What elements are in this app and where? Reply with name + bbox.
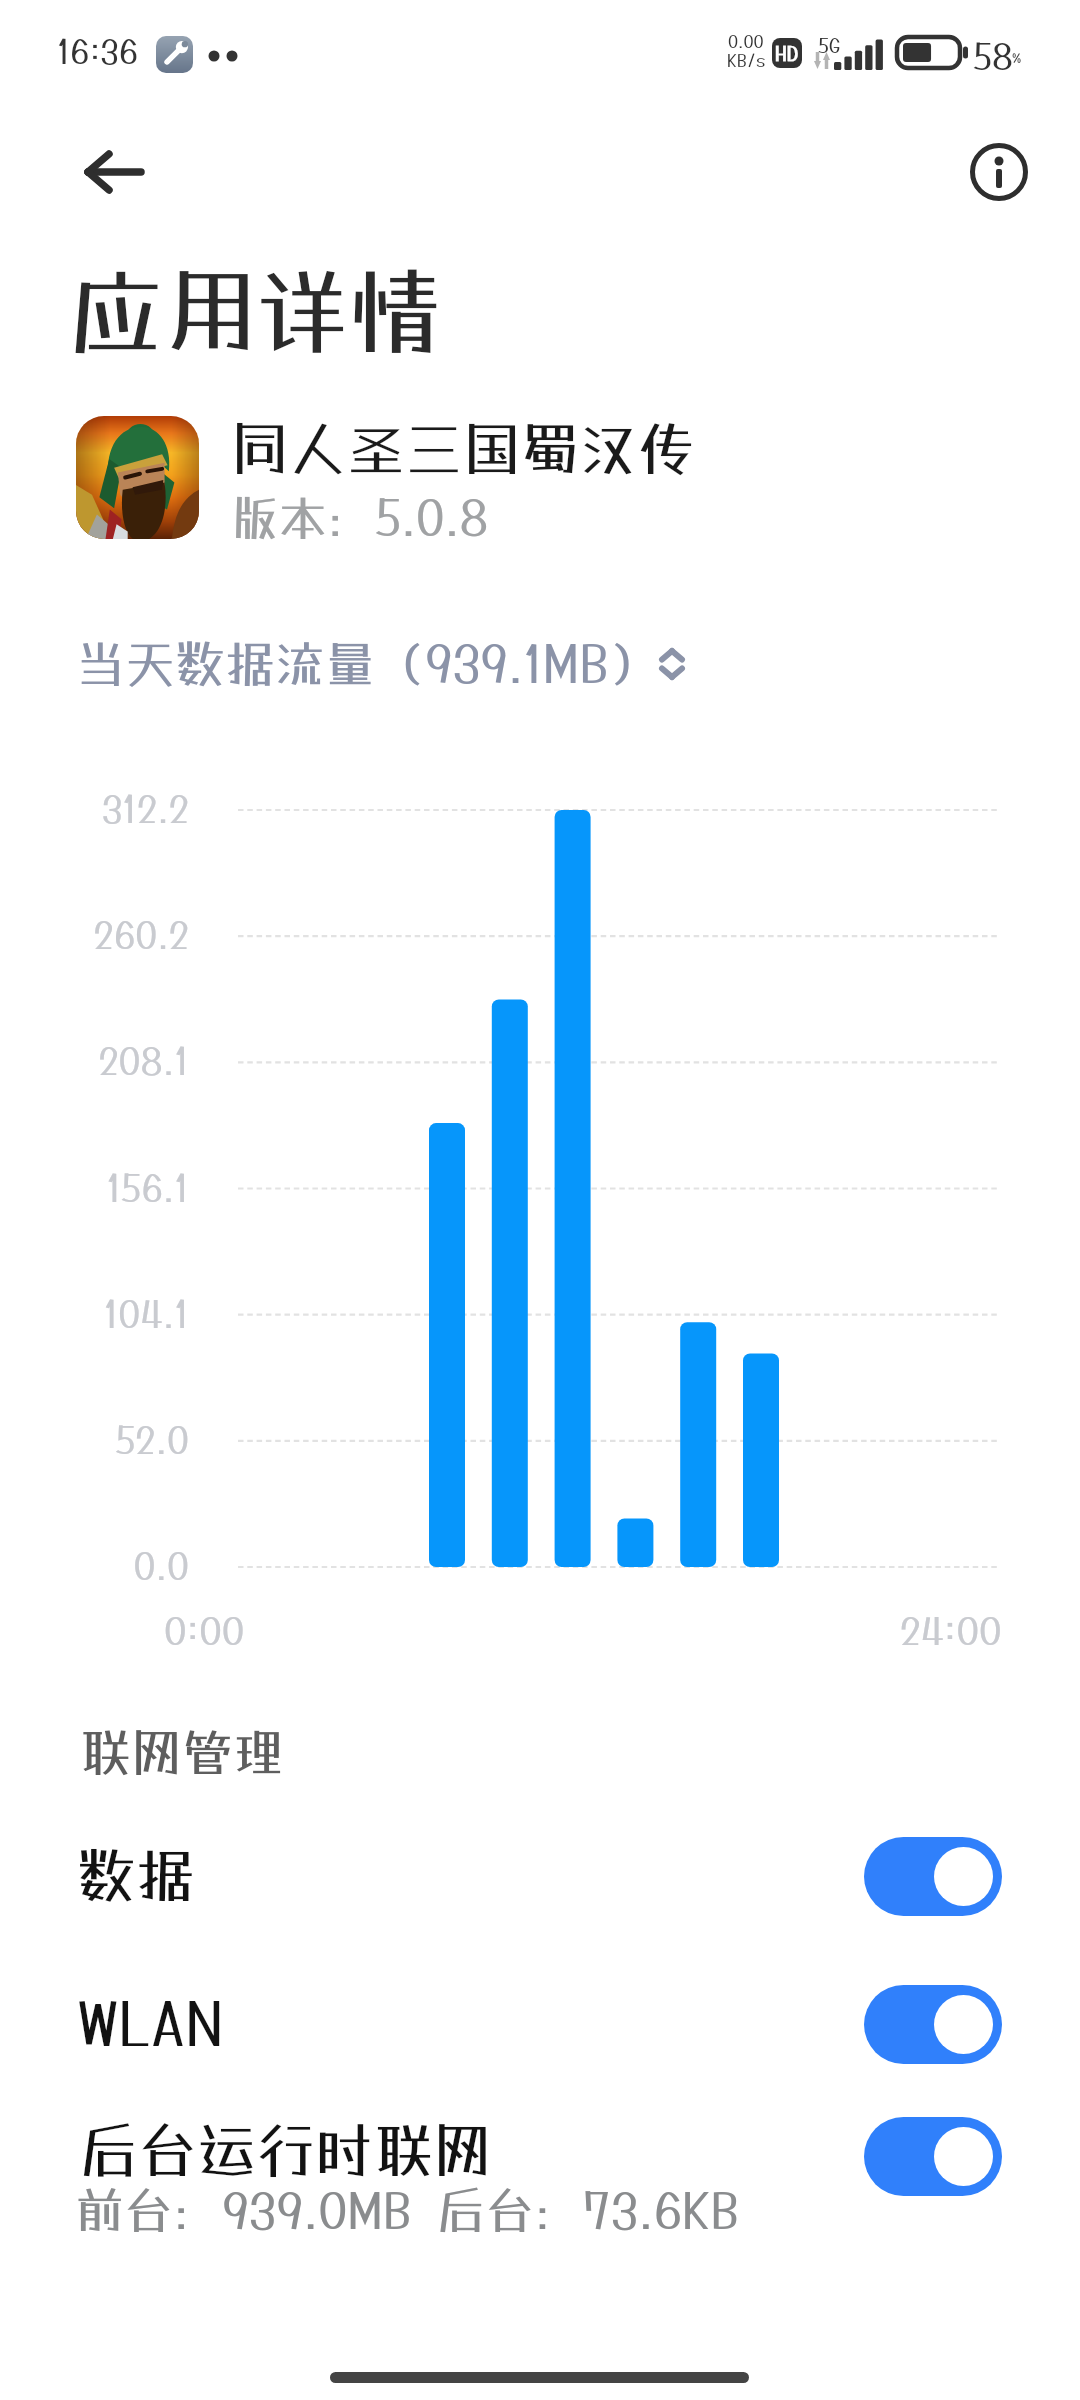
staticText: 前台：939.0MB 后台：73.6KB — [75, 2181, 740, 2239]
staticText: 版本：5.0.8 — [231, 489, 489, 546]
staticText: 104.1 — [30, 1292, 189, 1336]
staticText: 58 — [973, 36, 1014, 77]
button[interactable]: WLAN — [0, 1969, 1080, 2081]
staticText: 156.1 — [30, 1166, 189, 1210]
staticText: 当天数据流量（939.1MB） — [75, 634, 659, 693]
button[interactable]: Info — [955, 128, 1043, 216]
staticText: % — [1012, 50, 1022, 65]
staticText: 24:00 — [900, 1608, 1002, 1653]
staticText: 16:36 — [57, 32, 138, 71]
staticText: 52.0 — [30, 1418, 189, 1462]
staticText: 0.0 — [30, 1544, 189, 1588]
staticText: 260.2 — [30, 913, 189, 957]
button[interactable]: 当天数据流量（939.1MB） — [70, 628, 680, 690]
staticText: 208.1 — [30, 1039, 189, 1083]
staticText: 同人圣三国蜀汉传 — [231, 414, 696, 482]
staticText: 联网管理 — [80, 1722, 285, 1782]
staticText: HD — [775, 41, 799, 65]
staticText: 后台运行时联网 — [79, 2115, 493, 2185]
button[interactable]: 数据 — [0, 1821, 1080, 1933]
button[interactable]: Toggle — [864, 1837, 1002, 1916]
button[interactable]: Back — [70, 128, 158, 216]
button[interactable]: 后台运行时联网 — [0, 2101, 1080, 2236]
staticText: 0:00 — [164, 1608, 245, 1653]
staticText: 312.2 — [30, 787, 189, 831]
button[interactable]: Toggle — [864, 2117, 1002, 2196]
button[interactable]: Toggle — [864, 1985, 1002, 2064]
staticText: KB/s — [727, 50, 766, 70]
staticText: 应用详情 — [70, 256, 442, 366]
staticText: 0.00 — [728, 31, 764, 51]
staticText: 数据 — [77, 1840, 196, 1910]
staticText: 5G — [818, 33, 841, 57]
staticText: WLAN — [77, 1988, 224, 2058]
